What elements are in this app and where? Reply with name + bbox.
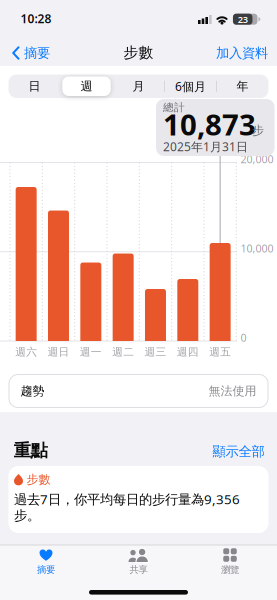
- staticText: 顯示全部: [212, 443, 264, 460]
- staticText: 瀏覽: [221, 564, 239, 576]
- button[interactable]: 6個月: [164, 74, 216, 98]
- staticText: 總計: [163, 101, 185, 114]
- staticText: 週三: [144, 345, 166, 358]
- staticText: 6個月: [175, 78, 206, 94]
- staticText: 加入資料: [216, 45, 268, 61]
- staticText: 重點: [13, 440, 47, 461]
- staticText: 10:28: [20, 10, 51, 26]
- staticText: 日: [28, 79, 40, 94]
- staticText: 0: [240, 330, 246, 345]
- staticText: 無法使用: [208, 384, 256, 398]
- staticText: 月: [132, 79, 144, 94]
- staticText: 週: [80, 79, 92, 94]
- button[interactable]: 月: [112, 74, 164, 98]
- staticText: 摘要: [37, 564, 55, 575]
- staticText: 週四: [177, 345, 199, 358]
- button[interactable]: 步數: [8, 466, 268, 533]
- staticText: 趨勢: [20, 384, 44, 398]
- button[interactable]: 顯示全部: [184, 443, 264, 459]
- staticText: 共享: [129, 564, 147, 575]
- staticText: 摘要: [24, 45, 50, 61]
- button[interactable]: 趨勢: [8, 374, 268, 408]
- button[interactable]: 共享: [100, 546, 176, 578]
- button[interactable]: 摘要: [12, 45, 50, 61]
- staticText: 10,000: [240, 241, 273, 255]
- staticText: 週五: [209, 345, 231, 358]
- staticText: 步。: [14, 507, 40, 524]
- button[interactable]: 日: [8, 74, 60, 98]
- staticText: 步數: [26, 472, 50, 487]
- button[interactable]: 加入資料: [204, 43, 268, 63]
- button[interactable]: 摘要: [8, 546, 84, 578]
- staticText: 週日: [47, 345, 69, 358]
- staticText: 週二: [112, 345, 134, 358]
- staticText: 20,000: [240, 152, 273, 166]
- staticText: 步數: [123, 43, 153, 61]
- staticText: 23: [238, 13, 248, 25]
- staticText: 2025年1月31日: [163, 138, 248, 154]
- staticText: 10,873: [163, 104, 256, 143]
- button[interactable]: 週: [60, 74, 112, 98]
- button[interactable]: 年: [216, 74, 268, 98]
- staticText: 週一: [80, 345, 102, 358]
- staticText: 週六: [15, 345, 37, 358]
- staticText: 步: [252, 123, 264, 138]
- staticText: 過去7日，你平均每日的步行量為9,356: [14, 490, 240, 508]
- button[interactable]: 瀏覽: [192, 546, 268, 578]
- staticText: 年: [236, 79, 248, 94]
